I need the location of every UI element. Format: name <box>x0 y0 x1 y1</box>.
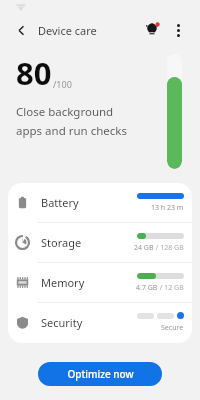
staticText: Memory <box>41 275 85 290</box>
staticText: Device care <box>38 23 97 38</box>
staticText: 80 <box>16 52 52 94</box>
staticText: apps and run checks <box>16 123 127 139</box>
button[interactable]: Tips <box>140 18 164 42</box>
staticText: 13 h 23 m <box>151 203 184 213</box>
button[interactable]: Back <box>10 19 32 41</box>
button[interactable]: Storage <box>8 223 192 262</box>
button[interactable]: Optimize now <box>38 362 162 386</box>
staticText: / 128 GB <box>154 243 184 253</box>
staticText: Close background <box>16 104 114 120</box>
staticText: / 12 GB <box>158 283 184 293</box>
staticText: 4.7 GB <box>136 283 158 293</box>
button[interactable]: Memory <box>8 263 192 302</box>
staticText: Security <box>41 315 83 330</box>
button[interactable]: More options <box>166 18 190 42</box>
button[interactable]: Security <box>8 303 192 342</box>
staticText: Storage <box>41 235 82 250</box>
staticText: Secure <box>161 323 184 333</box>
staticText: Battery <box>41 195 79 210</box>
button[interactable]: Battery <box>8 183 192 222</box>
staticText: Optimize now <box>67 367 134 381</box>
staticText: /100 <box>53 78 72 90</box>
staticText: 24 GB <box>134 243 154 253</box>
